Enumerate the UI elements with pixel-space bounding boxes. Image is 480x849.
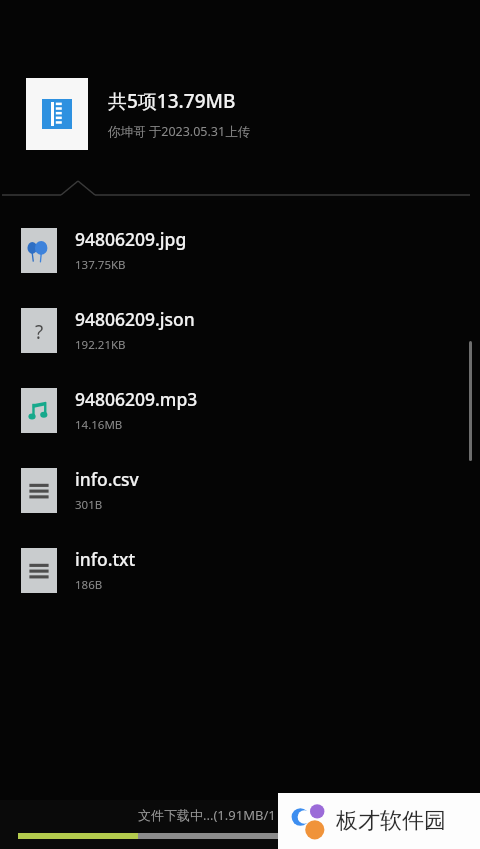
other: Unknown file type [27, 319, 51, 343]
staticText: 192.21KB [75, 337, 126, 353]
other: Text file [27, 559, 51, 583]
button[interactable]: Text file [0, 530, 480, 610]
button[interactable]: 文件下载中...(1.91MB/1 [0, 800, 480, 830]
staticText: 文件下载中...(1.91MB/1 [138, 806, 276, 824]
button[interactable]: Text file [0, 450, 480, 530]
staticText: info.csv [75, 467, 139, 491]
staticText: 301B [75, 497, 103, 513]
staticText: 你坤哥 于2023.05.31上传 [108, 123, 251, 140]
button[interactable]: Zip archive [0, 78, 480, 150]
staticText: 板才软件园 [336, 807, 446, 835]
other: Image file [27, 239, 51, 263]
button[interactable]: Image file [0, 210, 480, 290]
button[interactable]: Unknown file type [0, 290, 480, 370]
button[interactable]: Audio file [0, 370, 480, 450]
staticText: info.txt [75, 547, 136, 571]
staticText: 94806209.jpg [75, 227, 187, 251]
staticText: 14.16MB [75, 417, 123, 433]
staticText: 186B [75, 577, 103, 593]
staticText: 94806209.mp3 [75, 387, 198, 411]
staticText: ? [35, 319, 44, 343]
other: Text file [27, 479, 51, 503]
other: Audio file [27, 399, 51, 423]
staticText: 共5项13.79MB [108, 88, 236, 114]
staticText: 94806209.json [75, 307, 195, 331]
staticText: 137.75KB [75, 257, 126, 273]
other: Zip archive [42, 99, 72, 129]
